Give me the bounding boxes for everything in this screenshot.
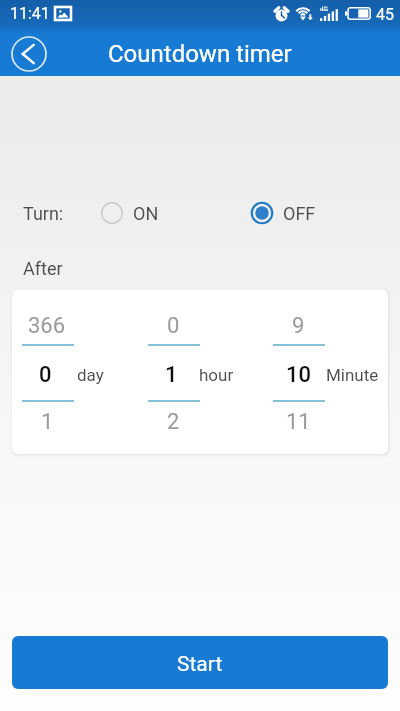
- staticText: Turn:: [23, 203, 64, 224]
- staticText: Start: [177, 652, 223, 677]
- button[interactable]: ON: [99, 201, 159, 225]
- staticText: hour: [199, 365, 234, 385]
- button[interactable]: 366: [21, 313, 73, 339]
- staticText: 11:41: [10, 4, 50, 23]
- button[interactable]: 0: [147, 313, 199, 339]
- staticText: OFF: [283, 203, 316, 224]
- staticText: After: [23, 258, 63, 279]
- button[interactable]: Back: [10, 35, 48, 73]
- staticText: 45: [376, 5, 394, 24]
- staticText: 0: [167, 313, 180, 339]
- button[interactable]: 0: [19, 362, 71, 388]
- staticText: 1: [165, 362, 178, 388]
- button[interactable]: OFF: [249, 201, 316, 225]
- staticText: 11: [286, 409, 311, 435]
- button[interactable]: 10: [273, 362, 325, 388]
- button[interactable]: 9: [272, 313, 324, 339]
- button[interactable]: 1: [21, 409, 73, 435]
- button[interactable]: Start: [12, 636, 388, 689]
- staticText: 366: [28, 313, 66, 339]
- staticText: 9: [292, 313, 305, 339]
- staticText: Countdown timer: [108, 40, 292, 68]
- button[interactable]: 11: [272, 409, 324, 435]
- staticText: day: [77, 365, 104, 385]
- button[interactable]: 2: [147, 409, 199, 435]
- button[interactable]: 1: [145, 362, 197, 388]
- staticText: 1: [41, 409, 54, 435]
- staticText: 10: [286, 362, 312, 388]
- staticText: 2: [167, 409, 180, 435]
- staticText: ON: [133, 203, 159, 224]
- staticText: 0: [39, 362, 52, 388]
- staticText: Minute: [326, 365, 379, 385]
